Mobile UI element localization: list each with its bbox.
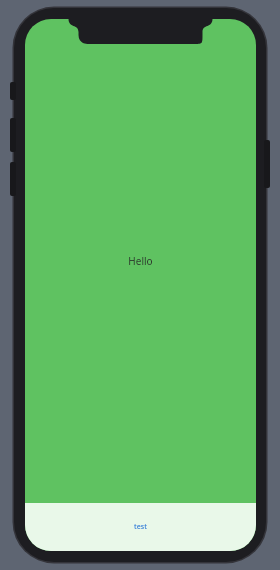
- button[interactable]: test: [134, 522, 147, 532]
- staticText: test: [134, 522, 147, 532]
- staticText: Hello: [128, 254, 153, 268]
